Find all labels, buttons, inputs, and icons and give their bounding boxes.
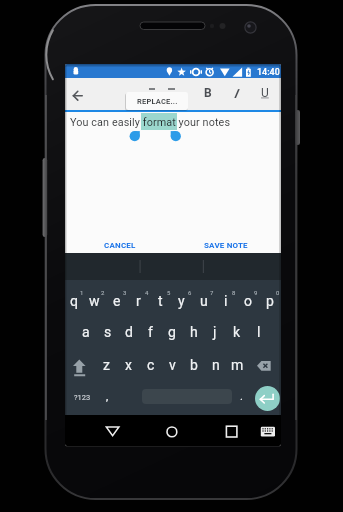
button[interactable]: ,: [100, 387, 114, 405]
staticText: I: [234, 86, 238, 101]
button[interactable]: b: [183, 356, 204, 374]
staticText: c: [147, 357, 155, 373]
staticText: REPLACE...: [137, 97, 178, 106]
button[interactable]: d: [118, 323, 139, 341]
staticText: d: [125, 324, 133, 340]
button[interactable]: [254, 356, 277, 375]
staticText: s: [104, 324, 112, 340]
button[interactable]: SAVE NOTE: [196, 236, 256, 254]
staticText: u: [200, 293, 208, 309]
button[interactable]: h: [183, 323, 204, 341]
button[interactable]: REPLACE...: [126, 92, 188, 110]
button[interactable]: v: [162, 356, 183, 374]
staticText: 3: [123, 289, 127, 296]
staticText: 14:40: [257, 67, 280, 78]
staticText: y: [178, 293, 185, 309]
staticText: p: [266, 293, 274, 309]
button[interactable]: l: [248, 323, 269, 341]
staticText: x: [125, 357, 132, 373]
button[interactable]: k: [226, 323, 247, 341]
staticText: CANCEL: [104, 241, 136, 250]
button[interactable]: r: [128, 292, 149, 310]
staticText: 5: [167, 289, 171, 296]
button[interactable]: x: [118, 356, 139, 374]
button[interactable]: p: [259, 292, 280, 310]
staticText: z: [103, 357, 110, 373]
staticText: w: [89, 293, 100, 309]
staticText: b: [190, 357, 198, 373]
staticText: SAVE NOTE: [204, 241, 248, 250]
staticText: You can easily format your notes: [70, 116, 231, 129]
button[interactable]: n: [205, 356, 226, 374]
button[interactable]: CANCEL: [95, 236, 145, 254]
staticText: a: [82, 324, 90, 340]
staticText: .: [240, 390, 243, 403]
button[interactable]: z: [96, 356, 117, 374]
staticText: v: [169, 357, 176, 373]
button[interactable]: y: [171, 292, 192, 310]
staticText: 6: [188, 289, 192, 296]
button[interactable]: u: [193, 292, 214, 310]
staticText: 9: [254, 289, 258, 296]
button[interactable]: o: [237, 292, 258, 310]
button[interactable]: m: [227, 356, 248, 374]
button[interactable]: s: [97, 323, 118, 341]
button[interactable]: w: [84, 292, 105, 310]
staticText: U: [261, 86, 269, 100]
button[interactable]: [255, 386, 280, 411]
staticText: k: [233, 324, 241, 340]
staticText: h: [190, 324, 198, 340]
staticText: m: [231, 357, 244, 373]
button[interactable]: i: [215, 292, 236, 310]
staticText: r: [136, 293, 141, 309]
button[interactable]: g: [161, 323, 182, 341]
button[interactable]: ?123: [67, 388, 97, 406]
staticText: i: [224, 293, 228, 309]
staticText: ?123: [74, 393, 91, 402]
staticText: 8: [232, 289, 236, 296]
button[interactable]: q: [65, 292, 84, 310]
button[interactable]: [67, 82, 91, 108]
staticText: l: [257, 324, 261, 340]
staticText: 7: [210, 289, 214, 296]
staticText: 0: [276, 289, 280, 296]
button[interactable]: [101, 420, 125, 442]
staticText: q: [70, 293, 78, 309]
staticText: j: [213, 324, 217, 340]
button[interactable]: f: [140, 323, 161, 341]
button[interactable]: j: [204, 323, 225, 341]
staticText: n: [212, 357, 220, 373]
staticText: 2: [101, 289, 105, 296]
button[interactable]: [256, 420, 280, 442]
button[interactable]: I: [226, 84, 246, 102]
button[interactable]: e: [106, 292, 127, 310]
staticText: B: [204, 86, 212, 100]
staticText: f: [148, 324, 153, 340]
button[interactable]: [160, 420, 184, 442]
button[interactable]: a: [75, 323, 96, 341]
button[interactable]: B: [198, 84, 218, 102]
staticText: ,: [106, 390, 109, 403]
staticText: 4: [145, 289, 149, 296]
button[interactable]: [68, 355, 91, 377]
button[interactable]: .: [234, 387, 248, 405]
staticText: 1: [80, 289, 84, 296]
button[interactable]: c: [140, 356, 161, 374]
staticText: e: [113, 293, 121, 309]
button[interactable]: [220, 420, 244, 442]
staticText: t: [158, 293, 163, 309]
button[interactable]: U: [255, 84, 275, 102]
button[interactable]: t: [150, 292, 171, 310]
staticText: o: [244, 293, 252, 309]
staticText: g: [168, 324, 176, 340]
